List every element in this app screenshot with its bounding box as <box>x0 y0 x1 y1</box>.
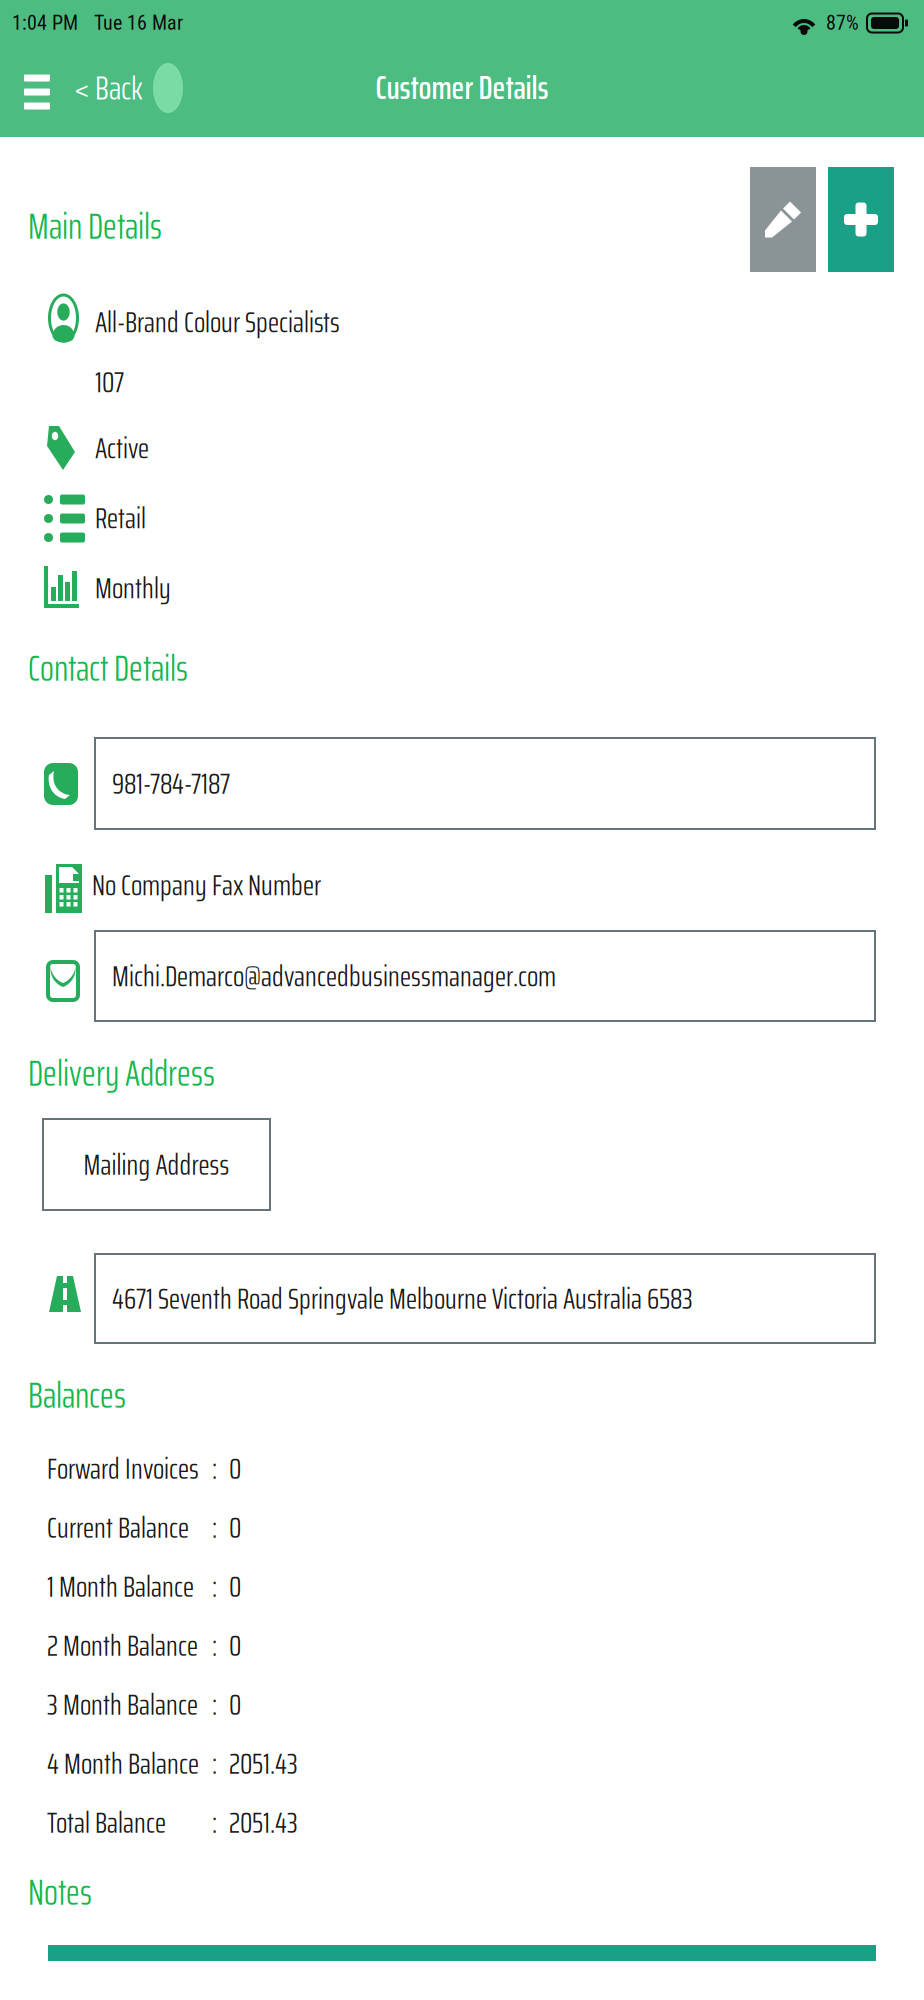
staticText: Mailing Address <box>83 1141 229 1188</box>
staticText: 0 <box>229 1563 241 1610</box>
staticText: 2051.43 <box>229 1740 298 1787</box>
staticText: : <box>212 1445 217 1492</box>
button[interactable]: Edit <box>750 167 816 272</box>
staticText: Customer Details <box>375 61 548 114</box>
staticText: Contact Details <box>28 640 188 697</box>
staticText: Current Balance <box>47 1504 189 1551</box>
staticText: No Company Fax Number <box>92 862 321 908</box>
staticText: 87% <box>826 11 859 35</box>
button[interactable]: < Back <box>74 58 164 118</box>
staticText: : <box>212 1563 217 1610</box>
button[interactable]: Add <box>828 167 894 272</box>
staticText: 1:04 PM <box>12 11 78 35</box>
staticText: 0 <box>229 1681 241 1728</box>
staticText: 3 Month Balance <box>47 1681 198 1728</box>
button[interactable]: Mailing Address <box>43 1119 270 1210</box>
staticText: : <box>212 1504 217 1551</box>
staticText: Main Details <box>28 198 162 255</box>
staticText: : <box>212 1740 217 1787</box>
staticText: Retail <box>95 495 146 541</box>
staticText: 2051.43 <box>229 1799 298 1846</box>
staticText: All-Brand Colour Specialists <box>95 299 340 345</box>
staticText: < Back <box>74 62 143 114</box>
staticText: : <box>212 1622 217 1669</box>
staticText: 107 <box>95 359 124 405</box>
staticText: Tue 16 Mar <box>94 11 183 35</box>
staticText: : <box>212 1799 217 1846</box>
staticText: Delivery Address <box>28 1045 215 1102</box>
staticText: Balances <box>28 1367 126 1424</box>
staticText: 1 Month Balance <box>47 1563 194 1610</box>
staticText: 0 <box>229 1622 241 1669</box>
staticText: Total Balance <box>47 1799 166 1846</box>
staticText: 2 Month Balance <box>47 1622 198 1669</box>
staticText: Michi.Demarco@advancedbusinessmanager.co… <box>112 953 556 999</box>
staticText: : <box>212 1681 217 1728</box>
staticText: Notes <box>28 1864 92 1921</box>
staticText: Active <box>95 425 149 471</box>
staticText: Forward Invoices <box>47 1445 199 1492</box>
staticText: 981-784-7187 <box>112 760 230 807</box>
staticText: 0 <box>229 1445 241 1492</box>
button[interactable]: Menu <box>14 62 60 122</box>
staticText: 4 Month Balance <box>47 1740 199 1787</box>
staticText: Monthly <box>95 565 171 611</box>
staticText: 4671 Seventh Road Springvale Melbourne V… <box>112 1275 693 1322</box>
staticText: 0 <box>229 1504 241 1551</box>
